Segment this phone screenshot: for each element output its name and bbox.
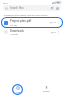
staticText: Jun 12 [50, 21, 56, 24]
button[interactable]: Project plan.pdf [1, 17, 63, 28]
button[interactable]: Downloads [0, 28, 64, 36]
button[interactable]: More options [57, 31, 60, 34]
staticText: Suggested files appear here for quick ac… [4, 14, 48, 17]
staticText: Jun 9 [51, 31, 56, 34]
staticText: 9:41 [3, 1, 8, 4]
button[interactable]: Menu [3, 5, 61, 11]
staticText: Project plan.pdf [10, 19, 32, 23]
button[interactable]: Browse [42, 85, 51, 94]
button[interactable]: Add [12, 84, 23, 95]
other: View options [51, 7, 54, 10]
staticText: 2.4 MB [10, 24, 17, 27]
staticText: New [16, 91, 20, 94]
button[interactable]: More options [57, 21, 60, 24]
staticText: 14 items [10, 33, 19, 36]
staticText: Browse [43, 90, 50, 93]
button[interactable]: Account [56, 7, 59, 10]
staticText: Search files [10, 6, 24, 10]
other: Menu [5, 7, 8, 10]
staticText: Downloads [10, 29, 24, 33]
